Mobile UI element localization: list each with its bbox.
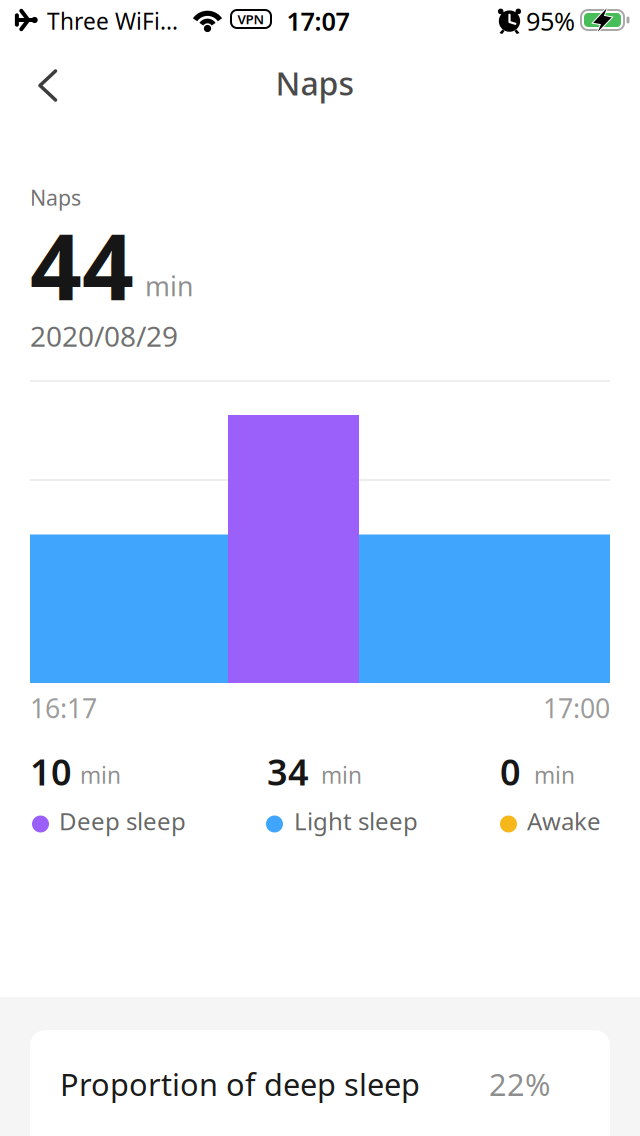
button[interactable]: Back xyxy=(38,70,55,100)
staticText: Three WiFi... xyxy=(47,6,178,36)
staticText: min xyxy=(534,760,575,790)
staticText: 16:17 xyxy=(30,690,97,726)
staticText: Naps xyxy=(275,62,354,104)
staticText: 2020/08/29 xyxy=(30,317,178,355)
staticText: Deep sleep xyxy=(59,805,186,837)
staticText: Naps xyxy=(30,183,81,212)
staticText: 22% xyxy=(489,1064,550,1104)
staticText: VPN xyxy=(237,10,264,28)
staticText: 17:00 xyxy=(543,690,610,726)
staticText: 95% xyxy=(526,4,575,38)
staticText: min xyxy=(321,760,362,790)
staticText: 17:07 xyxy=(286,4,349,38)
staticText: 10 xyxy=(30,748,72,795)
staticText: 0 xyxy=(500,748,521,795)
staticText: min xyxy=(80,760,121,790)
staticText: min xyxy=(145,268,193,304)
staticText: 34 xyxy=(267,748,309,795)
staticText: Proportion of deep sleep xyxy=(60,1064,420,1104)
staticText: Awake xyxy=(527,805,601,837)
staticText: Light sleep xyxy=(294,805,418,837)
staticText: 44 xyxy=(30,205,134,325)
